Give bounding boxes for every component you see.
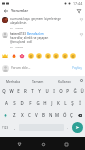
staticText: U [45,88,49,94]
button[interactable]: N [47,109,54,121]
button[interactable]: Emoji [28,53,34,59]
button[interactable]: Emoji [53,53,59,59]
button[interactable]: Ş [69,97,76,109]
button[interactable]: M [54,109,61,121]
staticText: Ü [80,88,84,94]
button[interactable]: K [55,97,62,109]
staticText: F [29,100,32,106]
staticText: Ğ [73,88,77,94]
staticText: Bınnafaz.lım [27,32,44,36]
button[interactable]: J [48,97,55,109]
staticText: I [53,88,55,94]
button[interactable]: Filter [75,7,82,14]
button[interactable]: C [26,109,33,121]
button[interactable]: Paylaş [71,65,83,71]
staticText: Kullanıcı [58,79,71,83]
button[interactable]: F [26,97,34,109]
button[interactable]: Emoji [62,53,68,59]
button[interactable]: B [40,109,47,121]
button[interactable]: ?123 [0,121,10,134]
staticText: Y [38,88,41,94]
staticText: Yorum ekle... [11,66,31,70]
staticText: İ [79,100,81,106]
button[interactable]: Merhaba [0,76,25,85]
button[interactable]: Tamam [25,76,51,85]
button[interactable]: H [41,97,48,109]
button[interactable]: P [64,85,71,97]
button[interactable]: , [10,121,19,134]
staticText: Ş [71,100,74,106]
button[interactable]: Home [38,139,48,149]
button[interactable]: U [43,85,50,97]
button[interactable]: D [18,97,26,109]
button[interactable]: Emoji [70,53,76,59]
button[interactable]: Ğ [71,85,78,97]
button[interactable]: Q [0,85,8,97]
button[interactable]: Ö [61,109,68,121]
button[interactable]: A [2,97,10,109]
staticText: L [64,100,67,106]
button[interactable]: E [15,85,22,97]
staticText: D [20,100,24,106]
staticText: M [55,112,60,118]
staticText: 17:44 [73,1,83,6]
staticText: . [67,125,69,131]
button[interactable]: Like [80,18,83,21]
button[interactable]: ou.murat.kaya geçmem biyerleringe ulaşab… [0,14,85,29]
button[interactable]: Recents [61,139,71,149]
button[interactable]: İ [76,97,83,109]
button[interactable]: Z [10,109,18,121]
staticText: J [51,100,53,106]
staticText: V [35,112,38,118]
staticText: hazırdılar, alimlik ve yaşayan @onuçlard… [10,36,49,44]
button[interactable]: Send [72,122,83,133]
button[interactable]: S [10,97,18,109]
button[interactable]: Backspace [75,109,85,121]
button[interactable]: T [29,85,36,97]
button[interactable]: Ç [68,109,75,121]
button[interactable]: Emoji [11,53,17,59]
button[interactable]: Keyboard settings [77,76,85,85]
button[interactable]: Like [80,33,83,36]
staticText: O [59,88,63,94]
button[interactable]: Emoji [2,53,8,59]
staticText: S [13,100,16,106]
staticText: hatees0133 [10,32,26,36]
staticText: G [36,100,40,106]
button[interactable]: G [34,97,41,109]
staticText: Paylaş [72,66,82,70]
button[interactable]: hatees0133 [0,29,85,48]
button[interactable]: Emoji [45,53,51,59]
staticText: N [49,112,53,118]
staticText: H [43,100,47,106]
staticText: P [66,88,69,94]
button[interactable]: Back [14,139,24,149]
staticText: ou.murat.kaya geçmem biyerleringe ulaşab… [10,17,61,25]
staticText: Merhaba [6,79,20,83]
staticText: X [21,112,24,118]
button[interactable]: Back [2,7,9,14]
staticText: C [28,112,31,118]
button[interactable]: W [8,85,15,97]
button[interactable]: V [33,109,40,121]
staticText: Ö [63,112,67,118]
staticText: 2s [10,26,13,29]
button[interactable]: L [62,97,69,109]
button[interactable]: O [57,85,64,97]
button[interactable]: Emoji [36,53,42,59]
button[interactable]: Emoji [19,53,25,59]
button[interactable]: Kullanıcı [51,76,77,85]
button[interactable]: Y [36,85,43,97]
button[interactable]: Shift [0,109,10,121]
button[interactable]: R [22,85,29,97]
staticText: Yanıtla [15,45,23,48]
staticText: K [57,100,60,106]
button[interactable]: X [18,109,26,121]
staticText: A [5,100,8,106]
staticText: , [14,125,16,131]
staticText: Q [2,88,6,94]
button[interactable]: I [50,85,57,97]
button[interactable]: Ü [78,85,85,97]
